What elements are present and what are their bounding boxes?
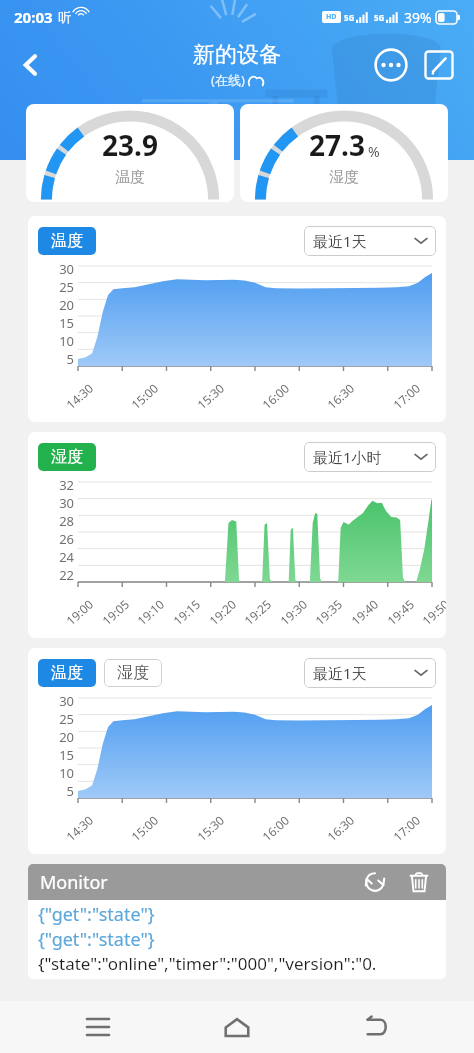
staticText: 39% xyxy=(404,8,432,27)
staticText: 最近1天 xyxy=(313,231,367,251)
staticText: 14:30 xyxy=(63,812,96,844)
staticText: 15:00 xyxy=(128,380,161,412)
staticText: 24 xyxy=(59,548,74,566)
button[interactable]: Back xyxy=(8,42,54,88)
staticText: HD xyxy=(326,12,337,22)
staticText: Monitor xyxy=(40,870,108,895)
staticText: 19:30 xyxy=(277,596,310,628)
staticText: 5G xyxy=(344,12,355,23)
staticText: 5 xyxy=(66,782,74,798)
button[interactable]: More options xyxy=(368,42,414,88)
staticText: 最近1天 xyxy=(313,663,367,683)
staticText: (在线) xyxy=(211,71,245,89)
staticText: 湿度 xyxy=(117,663,149,683)
staticText: 19:50 xyxy=(419,596,446,628)
staticText: 15:30 xyxy=(194,380,227,412)
staticText: 20:03 xyxy=(14,7,53,27)
button[interactable]: 23.9 xyxy=(26,104,234,202)
staticText: 23.9 xyxy=(102,126,158,164)
staticText: 新的设备 xyxy=(193,41,281,69)
staticText: 15 xyxy=(59,314,74,332)
staticText: 30 xyxy=(59,494,74,512)
staticText: 温度 xyxy=(51,231,83,251)
staticText: 19:45 xyxy=(384,596,417,628)
staticText: 19:35 xyxy=(312,596,345,628)
button[interactable]: 温度 xyxy=(38,659,96,687)
staticText: 30 xyxy=(59,260,74,278)
staticText: 25 xyxy=(59,710,74,728)
staticText: 湿度 xyxy=(51,447,83,467)
staticText: 最近1小时 xyxy=(313,447,382,467)
button[interactable]: 27.3 xyxy=(240,104,448,202)
button[interactable]: 湿度 xyxy=(38,443,96,471)
staticText: 湿度 xyxy=(329,168,359,187)
staticText: 27.3 xyxy=(309,126,365,164)
button[interactable]: 最近1小时 xyxy=(304,442,436,472)
staticText: 14:30 xyxy=(63,380,96,412)
button[interactable]: Edit xyxy=(416,42,462,88)
staticText: 26 xyxy=(59,530,74,548)
button[interactable]: Clear xyxy=(402,865,436,899)
staticText: 19:20 xyxy=(206,596,239,628)
staticText: 22 xyxy=(59,566,74,582)
button[interactable]: 最近1天 xyxy=(304,226,436,256)
staticText: 20 xyxy=(59,296,74,314)
staticText: 温度 xyxy=(115,168,145,187)
staticText: 15:30 xyxy=(194,812,227,844)
staticText: 19:05 xyxy=(99,596,132,628)
staticText: 17:00 xyxy=(390,812,423,844)
staticText: 5G xyxy=(374,12,385,23)
staticText: 28 xyxy=(59,512,74,530)
staticText: {"state":"online","timer":"000","version… xyxy=(38,952,377,975)
staticText: 16:00 xyxy=(259,380,292,412)
staticText: 5 xyxy=(66,350,74,366)
staticText: 20 xyxy=(59,728,74,746)
staticText: 10 xyxy=(59,332,74,350)
staticText: 10 xyxy=(59,764,74,782)
staticText: 听 xyxy=(58,9,71,25)
staticText: 32 xyxy=(59,476,74,494)
staticText: % xyxy=(368,142,380,161)
button[interactable]: 温度 xyxy=(38,227,96,255)
staticText: 17:00 xyxy=(390,380,423,412)
staticText: 15:00 xyxy=(128,812,161,844)
button[interactable]: Recent apps xyxy=(70,1001,126,1053)
staticText: 19:10 xyxy=(134,596,167,628)
staticText: 19:40 xyxy=(348,596,381,628)
staticText: 19:25 xyxy=(241,596,274,628)
button[interactable]: Home xyxy=(209,1001,265,1053)
staticText: 25 xyxy=(59,278,74,296)
staticText: 30 xyxy=(59,692,74,710)
button[interactable]: 湿度 xyxy=(104,659,162,687)
staticText: 16:00 xyxy=(259,812,292,844)
button[interactable]: Back xyxy=(348,1001,404,1053)
button[interactable]: Refresh xyxy=(358,865,392,899)
staticText: 16:30 xyxy=(324,380,357,412)
staticText: 19:15 xyxy=(170,596,203,628)
staticText: 15 xyxy=(59,746,74,764)
staticText: {"get":"state"} xyxy=(38,902,155,927)
staticText: {"get":"state"} xyxy=(38,927,155,952)
staticText: 16:30 xyxy=(324,812,357,844)
staticText: 温度 xyxy=(51,663,83,683)
button[interactable]: 最近1天 xyxy=(304,658,436,688)
staticText: 19:00 xyxy=(63,596,96,628)
